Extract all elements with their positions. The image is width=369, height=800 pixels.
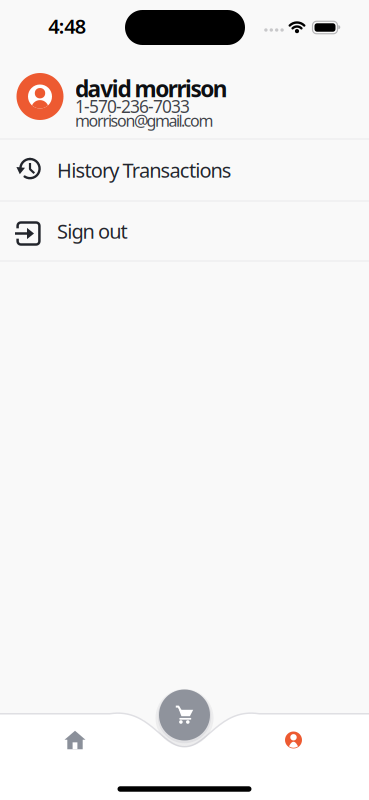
staticText: david morrison xyxy=(75,73,228,103)
staticText: Sign out xyxy=(57,218,127,244)
button[interactable]: Sign out xyxy=(0,201,369,261)
staticText: History Transactions xyxy=(57,157,232,183)
staticText: 1-570-236-7033 xyxy=(75,95,190,118)
button[interactable]: History Transactions xyxy=(0,139,369,200)
button[interactable]: Profile xyxy=(271,722,315,758)
button[interactable]: Home xyxy=(53,722,97,758)
button[interactable]: david morrison xyxy=(0,73,369,139)
staticText: 4:48 xyxy=(48,13,86,39)
button[interactable]: Cart xyxy=(159,689,210,740)
staticText: morrison@gmail.com xyxy=(75,110,213,131)
